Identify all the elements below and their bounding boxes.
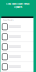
staticText: Home / Results [3, 19, 14, 21]
staticText: Updates [14, 6, 22, 8]
staticText: CBSE Board Exam Result [6, 3, 30, 5]
